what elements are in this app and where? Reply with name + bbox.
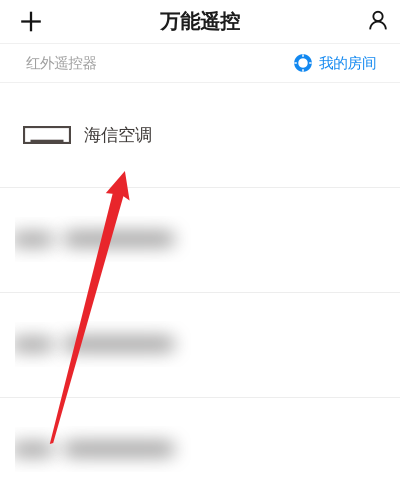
button[interactable]: Add remote [0,0,62,43]
button[interactable]: Account [350,0,400,43]
button[interactable]: 海信空调 [0,83,400,187]
staticText: 海信空调 [84,124,152,146]
staticText: 红外遥控器 [26,54,97,72]
staticText: 万能遥控 [160,9,240,34]
button[interactable]: Remote device [0,188,400,293]
button[interactable]: Remote device [0,293,400,398]
staticText: 我的房间 [319,54,377,72]
button[interactable]: Remote device [0,398,400,495]
button[interactable]: 我的房间 [293,44,377,82]
